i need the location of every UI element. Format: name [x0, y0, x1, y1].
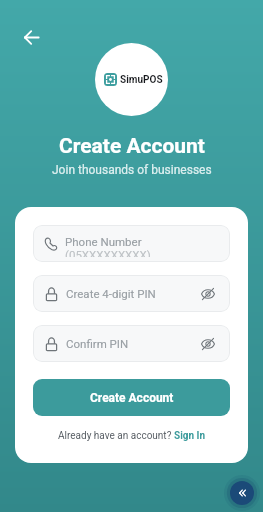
staticText: Already have an account? [58, 430, 174, 442]
staticText: Create Account [59, 134, 205, 159]
staticText: (05XXXXXXXXX) [65, 248, 151, 257]
button[interactable]: Confirm PIN [33, 325, 230, 362]
staticText: Confirm PIN [66, 337, 129, 350]
staticText: Create 4-digit PIN [66, 287, 156, 300]
button[interactable]: Phone Number [33, 225, 230, 262]
button[interactable]: Show PIN [200, 336, 216, 352]
button[interactable]: Sign In [174, 430, 206, 442]
button[interactable]: Create 4-digit PIN [33, 275, 230, 312]
staticText: Create Account [90, 391, 174, 405]
button[interactable]: Show PIN [200, 286, 216, 302]
staticText: Join thousands of businesses [52, 163, 212, 177]
staticText: SimuPOS [120, 74, 163, 86]
button[interactable]: Create Account [33, 379, 230, 416]
staticText: Phone Number [65, 235, 142, 248]
staticText: Sign In [174, 430, 206, 442]
button[interactable]: Back [15, 21, 47, 53]
button[interactable]: Collapse [230, 481, 254, 505]
